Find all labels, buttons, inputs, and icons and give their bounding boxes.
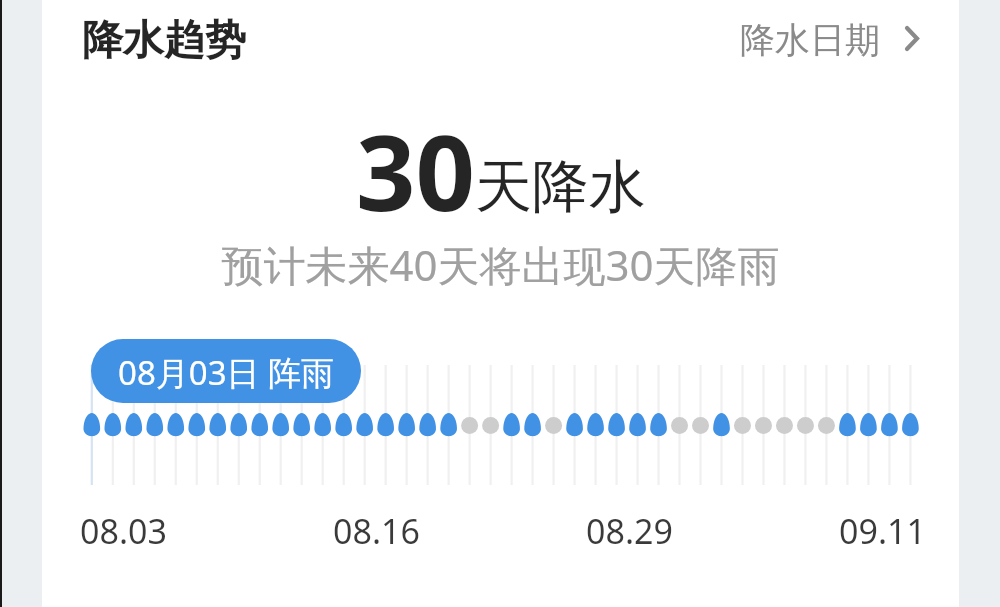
staticText: 08.29	[586, 508, 673, 554]
staticText: 30	[356, 100, 475, 242]
staticText: 天降水	[475, 151, 646, 223]
staticText: 预计未来40天将出现30天降雨	[221, 236, 780, 293]
staticText: 08.03	[80, 508, 167, 554]
staticText: 降水日期	[740, 18, 880, 62]
button[interactable]: 08月03日 阵雨	[91, 339, 361, 403]
button[interactable]: 降水日期	[736, 14, 923, 66]
staticText: 08.16	[333, 508, 420, 554]
button[interactable]: 降水趋势	[82, 15, 246, 67]
other: 查看降水日期	[905, 26, 919, 51]
staticText: 08月03日 阵雨	[118, 350, 335, 395]
staticText: 09.11	[839, 508, 926, 554]
